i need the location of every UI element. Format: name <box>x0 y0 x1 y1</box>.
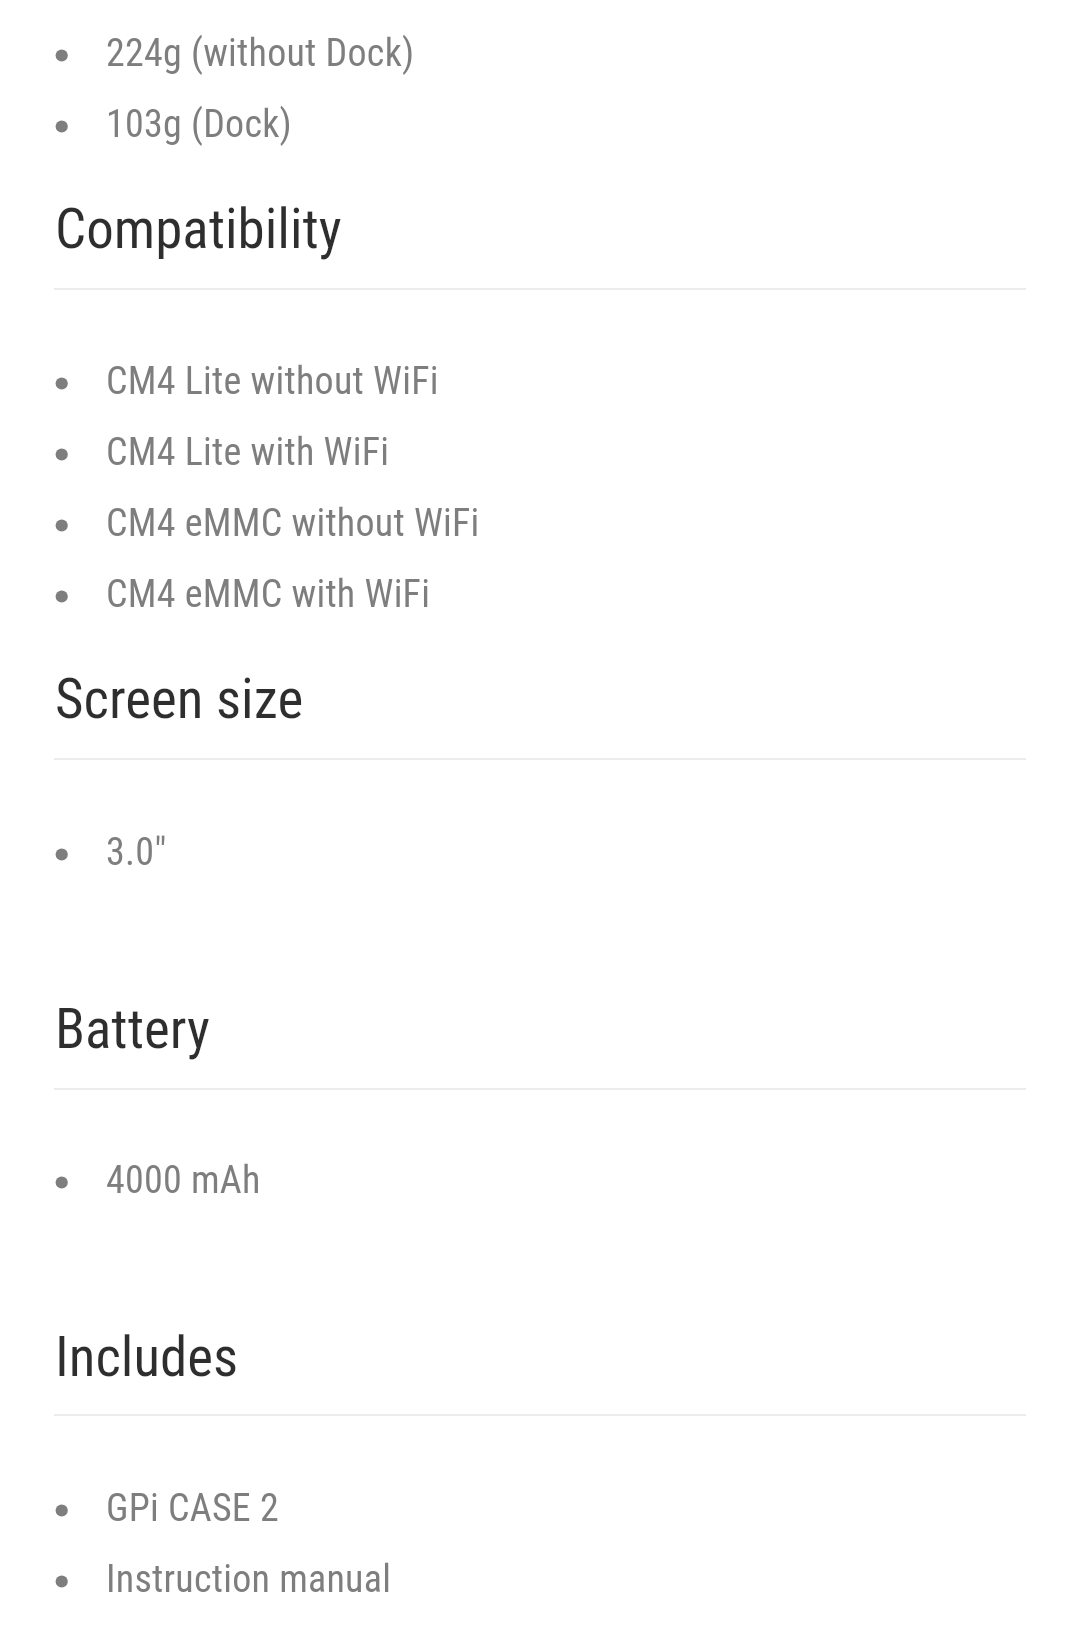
button[interactable]: 4000 mAh <box>0 1146 1080 1216</box>
button[interactable]: CM4 Lite without WiFi <box>0 347 1080 417</box>
staticText: GPi CASE 2 <box>106 1486 279 1531</box>
staticText: Instruction manual <box>106 1557 392 1602</box>
staticText: 3.0" <box>106 830 167 875</box>
button[interactable]: Compatibility <box>55 197 342 261</box>
staticText: 4000 mAh <box>106 1158 261 1203</box>
staticText: 224g (without Dock) <box>106 31 415 76</box>
button[interactable]: Screen size <box>55 667 304 731</box>
staticText: Screen size <box>55 667 304 731</box>
button[interactable]: GPi CASE 2 <box>0 1474 1080 1544</box>
button[interactable]: Instruction manual <box>0 1545 1080 1615</box>
staticText: 103g (Dock) <box>106 102 292 147</box>
button[interactable]: 103g (Dock) <box>0 90 1080 160</box>
staticText: CM4 Lite without WiFi <box>106 359 439 404</box>
staticText: CM4 eMMC without WiFi <box>106 501 480 546</box>
staticText: Includes <box>55 1325 239 1389</box>
button[interactable]: 224g (without Dock) <box>0 19 1080 89</box>
button[interactable]: CM4 Lite with WiFi <box>0 418 1080 488</box>
button[interactable]: Includes <box>55 1325 239 1389</box>
staticText: Battery <box>55 997 210 1061</box>
button[interactable]: Battery <box>55 997 210 1061</box>
button[interactable]: CM4 eMMC without WiFi <box>0 489 1080 559</box>
button[interactable]: 3.0" <box>0 818 1080 888</box>
button[interactable]: CM4 eMMC with WiFi <box>0 560 1080 630</box>
staticText: CM4 Lite with WiFi <box>106 430 390 475</box>
staticText: CM4 eMMC with WiFi <box>106 572 431 617</box>
staticText: Compatibility <box>55 197 342 261</box>
